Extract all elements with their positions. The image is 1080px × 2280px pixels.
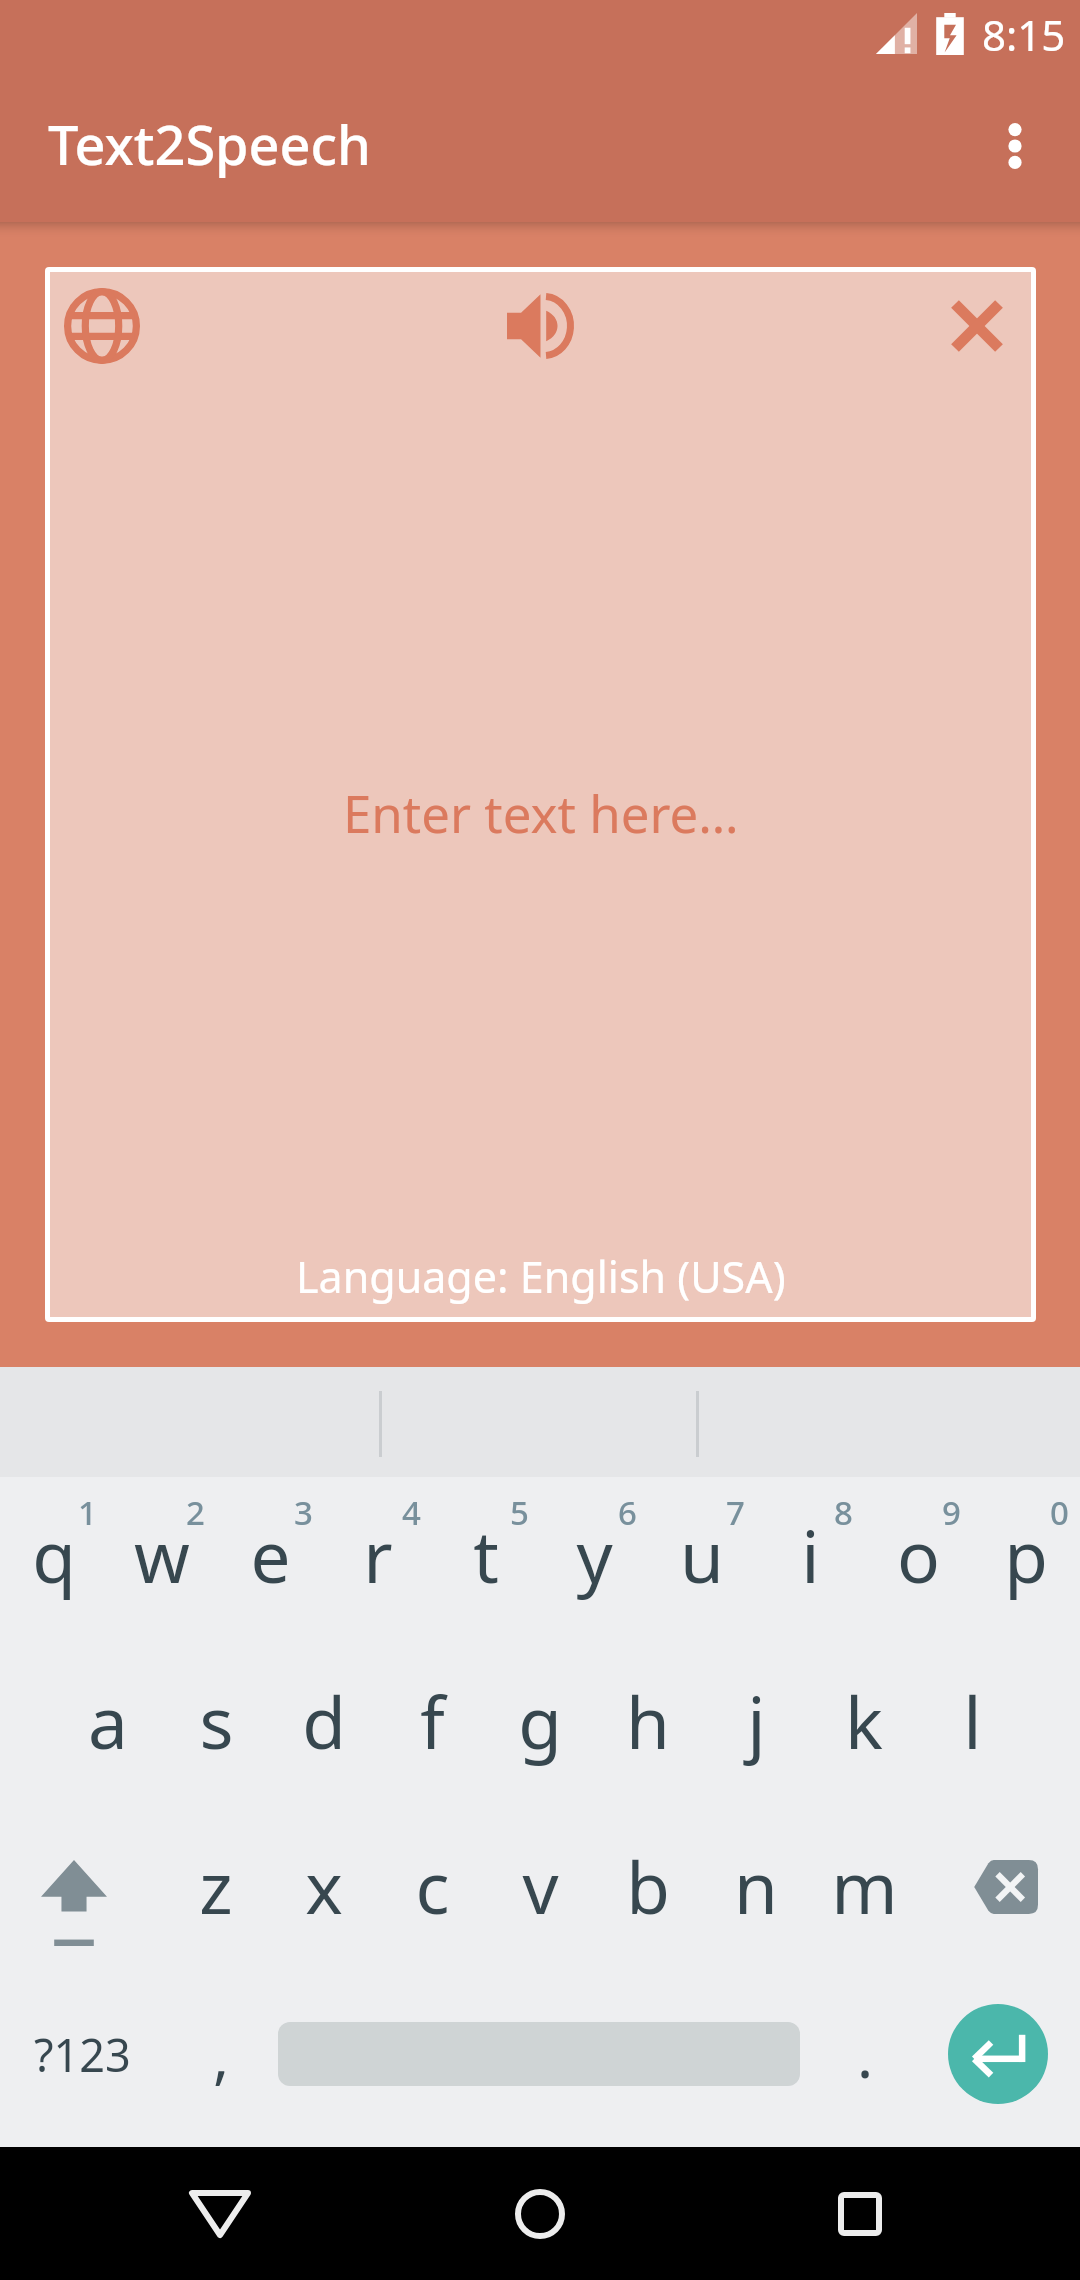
staticText: d bbox=[302, 1673, 346, 1770]
button[interactable]: 2 bbox=[108, 1477, 216, 1645]
staticText: f bbox=[420, 1673, 445, 1770]
button[interactable]: ?123 bbox=[0, 1974, 164, 2147]
button[interactable]: 7 bbox=[648, 1477, 756, 1645]
staticText: . bbox=[857, 2014, 874, 2096]
button[interactable]: 4 bbox=[324, 1477, 432, 1645]
staticText: 8 bbox=[834, 1490, 853, 1535]
staticText: x bbox=[305, 1838, 343, 1935]
button[interactable]: Back bbox=[160, 2147, 280, 2280]
staticText: 3 bbox=[294, 1490, 313, 1535]
button[interactable]: k bbox=[810, 1645, 918, 1810]
staticText: 9 bbox=[942, 1490, 961, 1535]
button[interactable]: Recents bbox=[800, 2147, 920, 2280]
button[interactable]: v bbox=[486, 1810, 594, 1974]
staticText: 6 bbox=[618, 1490, 637, 1535]
staticText: w bbox=[134, 1507, 190, 1604]
button[interactable]: 3 bbox=[216, 1477, 324, 1645]
staticText: u bbox=[680, 1507, 724, 1604]
staticText: l bbox=[963, 1673, 982, 1770]
staticText: 7 bbox=[726, 1490, 745, 1535]
staticText: s bbox=[199, 1673, 234, 1770]
button[interactable]: 0 bbox=[972, 1477, 1080, 1645]
button[interactable]: . bbox=[810, 1974, 920, 2147]
staticText: 1 bbox=[78, 1490, 97, 1535]
staticText: Text2Speech bbox=[48, 107, 371, 181]
staticText: h bbox=[626, 1673, 670, 1770]
staticText: Enter text here… bbox=[343, 778, 739, 847]
staticText: j bbox=[747, 1673, 766, 1770]
button[interactable]: 1 bbox=[0, 1477, 108, 1645]
button[interactable]: d bbox=[270, 1645, 378, 1810]
button[interactable]: g bbox=[486, 1645, 594, 1810]
button[interactable]: 8 bbox=[756, 1477, 864, 1645]
staticText: o bbox=[897, 1507, 940, 1604]
button[interactable]: Speak bbox=[488, 272, 592, 380]
button[interactable]: j bbox=[702, 1645, 810, 1810]
button[interactable]: n bbox=[702, 1810, 810, 1974]
button[interactable]: l bbox=[918, 1645, 1026, 1810]
button[interactable]: s bbox=[162, 1645, 270, 1810]
button[interactable]: f bbox=[378, 1645, 486, 1810]
staticText: ?123 bbox=[34, 2024, 131, 2085]
button[interactable]: , bbox=[164, 1974, 278, 2147]
staticText: , bbox=[213, 2014, 230, 2096]
staticText: c bbox=[415, 1838, 450, 1935]
button[interactable]: Clear bbox=[925, 272, 1029, 380]
staticText: Language: English (USA) bbox=[296, 1247, 786, 1306]
button[interactable]: h bbox=[594, 1645, 702, 1810]
staticText: b bbox=[626, 1838, 670, 1935]
staticText: n bbox=[734, 1838, 778, 1935]
button[interactable]: a bbox=[54, 1645, 162, 1810]
staticText: a bbox=[88, 1673, 128, 1770]
staticText: z bbox=[199, 1838, 233, 1935]
button[interactable]: z bbox=[162, 1810, 270, 1974]
button[interactable]: x bbox=[270, 1810, 378, 1974]
button[interactable]: b bbox=[594, 1810, 702, 1974]
button[interactable]: Enter bbox=[920, 1974, 1076, 2147]
staticText: y bbox=[576, 1507, 613, 1604]
staticText: 2 bbox=[186, 1490, 205, 1535]
staticText: e bbox=[250, 1507, 291, 1604]
button[interactable]: Home bbox=[480, 2147, 600, 2280]
staticText: t bbox=[473, 1507, 499, 1604]
staticText: k bbox=[845, 1673, 883, 1770]
button[interactable]: 5 bbox=[432, 1477, 540, 1645]
button[interactable]: 6 bbox=[540, 1477, 648, 1645]
button[interactable]: Backspace bbox=[918, 1810, 1080, 1974]
staticText: m bbox=[831, 1838, 898, 1935]
button[interactable]: c bbox=[378, 1810, 486, 1974]
button[interactable]: More options bbox=[966, 66, 1064, 222]
button[interactable]: Shift bbox=[0, 1810, 162, 1974]
button[interactable]: m bbox=[810, 1810, 918, 1974]
button[interactable]: 9 bbox=[864, 1477, 972, 1645]
staticText: 4 bbox=[402, 1490, 421, 1535]
staticText: p bbox=[1004, 1507, 1048, 1604]
staticText: 0 bbox=[1050, 1490, 1069, 1535]
staticText: g bbox=[518, 1673, 562, 1770]
staticText: q bbox=[32, 1507, 76, 1604]
staticText: i bbox=[801, 1507, 820, 1604]
staticText: r bbox=[363, 1507, 393, 1604]
staticText: v bbox=[522, 1838, 559, 1935]
staticText: 5 bbox=[510, 1490, 529, 1535]
staticText: 8:15 bbox=[982, 6, 1066, 63]
button[interactable]: Language bbox=[50, 272, 154, 380]
